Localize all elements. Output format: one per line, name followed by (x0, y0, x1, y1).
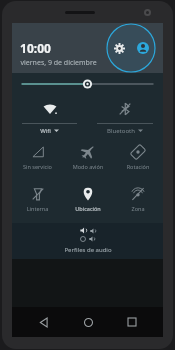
staticText: Modo avión (64, 163, 112, 170)
button[interactable]: Rotación automática (113, 141, 163, 177)
button[interactable]: Sin servicio (12, 141, 63, 177)
button[interactable]: Home (75, 309, 101, 335)
button[interactable]: Perfiles de audio (12, 223, 163, 259)
button[interactable]: Brightness (12, 73, 163, 95)
staticText: Zona (114, 205, 162, 212)
button[interactable]: Modo avión (63, 141, 113, 177)
staticText: Ubicación (64, 205, 112, 212)
staticText: 10:00 (20, 40, 51, 56)
button[interactable]: Bluetooth (87, 95, 163, 137)
staticText: Rotación automática (114, 163, 162, 170)
staticText: Linterna (13, 205, 62, 212)
button[interactable]: Ubicación (63, 183, 113, 219)
staticText: viernes, 9 de diciembre (20, 58, 97, 68)
button[interactable]: Settings (110, 39, 128, 57)
staticText: Sin servicio (13, 163, 62, 170)
button[interactable]: Zona (113, 183, 163, 219)
staticText: Perfiles de audio (64, 246, 112, 254)
button[interactable]: Linterna (12, 183, 63, 219)
button[interactable]: User (134, 39, 152, 57)
staticText: Bluetooth (107, 127, 135, 135)
button[interactable]: Back (30, 309, 56, 335)
button[interactable]: Recents (119, 309, 145, 335)
staticText: Wifi (40, 127, 51, 135)
button[interactable]: Wifi (12, 95, 87, 137)
